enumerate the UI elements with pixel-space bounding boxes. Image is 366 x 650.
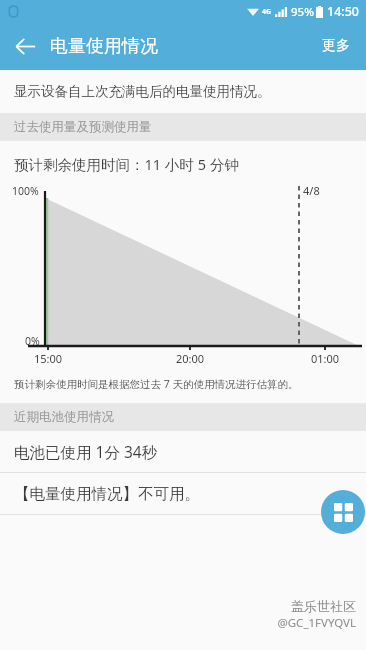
staticText: 01:00 [311,351,340,366]
staticText: @GC_1FVYQVL [244,615,356,631]
staticText: 4G [262,7,272,17]
staticText: 14:50 [327,3,360,20]
staticText: 95% [291,4,314,20]
staticText: 【电量使用情况】不可用。 [14,484,200,504]
button[interactable]: 更多 [318,29,354,63]
staticText: 0% [25,334,40,348]
staticText: 100% [12,184,39,198]
staticText: 更多 [322,37,350,55]
button[interactable]: Back [4,25,46,67]
staticText: 预计剩余使用时间：11 小时 5 分钟 [14,154,239,174]
staticText: 近期电池使用情况 [14,409,114,425]
button[interactable]: Apps [321,490,365,534]
staticText: 电池已使用 1分 34秒 [14,441,158,462]
button[interactable]: 【电量使用情况】不可用。 [0,473,366,514]
staticText: 预计剩余使用时间是根据您过去 7 天的使用情况进行估算的。 [14,377,299,391]
staticText: 4/8 [303,183,320,198]
staticText: 盖乐世社区 [244,598,356,614]
staticText: 显示设备自上次充满电后的电量使用情况。 [14,83,271,100]
staticText: 电量使用情况 [50,35,158,58]
staticText: 15:00 [34,351,63,366]
button[interactable]: 电池已使用 1分 34秒 [0,431,366,472]
staticText: 过去使用量及预测使用量 [14,119,152,135]
staticText: 20:00 [176,351,205,366]
